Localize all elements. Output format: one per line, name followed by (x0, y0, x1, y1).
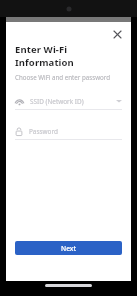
other: Choose network (116, 99, 122, 103)
button[interactable]: Next (15, 241, 122, 255)
staticText: Choose WiFi and enter password (15, 73, 111, 81)
button[interactable]: Password (15, 123, 122, 140)
staticText: Password (29, 127, 58, 136)
staticText: SSID (Network ID) (30, 97, 84, 106)
staticText: Next (61, 244, 76, 253)
button[interactable]: Close (108, 25, 126, 43)
button[interactable]: SSID (Network ID) (15, 93, 122, 110)
staticText: Enter Wi-Fi Information (15, 43, 122, 69)
